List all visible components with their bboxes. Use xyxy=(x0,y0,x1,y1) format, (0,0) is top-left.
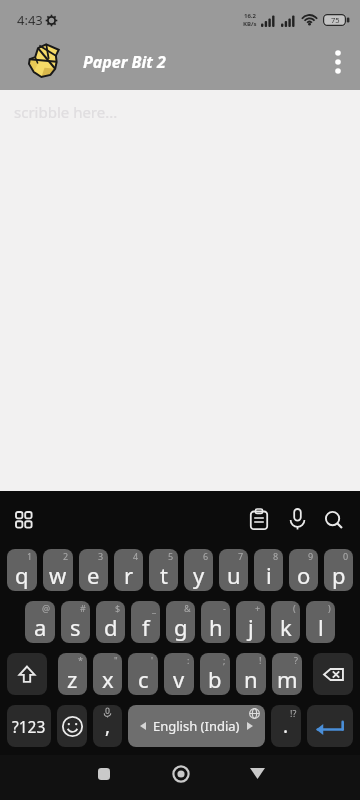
button[interactable]: h xyxy=(201,601,230,643)
staticText: . xyxy=(283,713,289,739)
staticText: ? xyxy=(294,654,298,666)
staticText: n xyxy=(244,664,258,694)
button[interactable]: t xyxy=(149,549,178,591)
staticText: l xyxy=(318,612,324,642)
staticText: o xyxy=(297,560,311,590)
staticText: ; xyxy=(223,654,226,666)
staticText: # xyxy=(80,602,86,614)
button[interactable]: English (India) xyxy=(128,705,265,747)
staticText: : xyxy=(187,654,190,666)
staticText: " xyxy=(114,654,118,666)
button[interactable] xyxy=(307,705,353,747)
button[interactable] xyxy=(65,755,142,792)
staticText: x xyxy=(102,664,114,694)
button[interactable] xyxy=(7,653,47,695)
staticText: b xyxy=(208,664,222,694)
button[interactable]: f xyxy=(131,601,160,643)
button[interactable]: n xyxy=(236,653,266,695)
staticText: ) xyxy=(328,602,331,614)
button[interactable]: o xyxy=(289,549,318,591)
button[interactable] xyxy=(142,755,219,792)
staticText: u xyxy=(227,560,241,590)
staticText: 4:43 xyxy=(17,11,43,29)
button[interactable]: ?123 xyxy=(7,705,51,747)
staticText: h xyxy=(209,612,223,642)
staticText: 3 xyxy=(98,550,104,562)
staticText: c xyxy=(138,664,149,694)
button[interactable]: k xyxy=(271,601,300,643)
button[interactable] xyxy=(278,495,316,544)
staticText: English (India) xyxy=(153,717,240,735)
staticText: f xyxy=(142,612,150,642)
staticText: 1 xyxy=(27,550,33,562)
button[interactable]: u xyxy=(219,549,248,591)
button[interactable] xyxy=(316,40,360,84)
staticText: ! xyxy=(259,654,262,666)
staticText: p xyxy=(332,560,346,590)
button[interactable]: x xyxy=(93,653,122,695)
staticText: 5 xyxy=(168,550,174,562)
staticText: 8 xyxy=(273,550,279,562)
button[interactable]: d xyxy=(96,601,125,643)
staticText: y xyxy=(193,560,205,590)
staticText: j xyxy=(248,612,254,642)
staticText: - xyxy=(223,602,226,614)
staticText: w xyxy=(49,560,67,590)
staticText: KB/s xyxy=(243,20,257,28)
staticText: Paper Bit 2 xyxy=(83,51,166,73)
button[interactable]: , xyxy=(93,705,122,747)
staticText: a xyxy=(34,612,47,642)
staticText: + xyxy=(255,602,261,614)
button[interactable]: . xyxy=(271,705,301,747)
button[interactable] xyxy=(316,495,352,544)
button[interactable]: e xyxy=(79,549,108,591)
staticText: * xyxy=(78,654,83,666)
button[interactable] xyxy=(57,705,87,747)
staticText: 7 xyxy=(238,550,244,562)
staticText: t xyxy=(160,560,168,590)
staticText: scribble here... xyxy=(14,102,118,122)
button[interactable]: z xyxy=(58,653,87,695)
staticText: & xyxy=(184,602,191,614)
button[interactable]: g xyxy=(166,601,195,643)
button[interactable]: c xyxy=(128,653,158,695)
staticText: @ xyxy=(42,602,51,614)
button[interactable]: l xyxy=(306,601,335,643)
button[interactable] xyxy=(219,755,296,792)
staticText: ( xyxy=(293,602,296,614)
button[interactable]: r xyxy=(114,549,143,591)
staticText: 2 xyxy=(63,550,69,562)
button[interactable]: b xyxy=(200,653,230,695)
staticText: ?123 xyxy=(12,716,46,737)
staticText: ' xyxy=(151,654,154,666)
staticText: 16.2 xyxy=(244,12,256,20)
staticText: _ xyxy=(152,602,156,614)
staticText: q xyxy=(15,560,29,590)
button[interactable] xyxy=(313,653,353,695)
button[interactable] xyxy=(240,495,278,544)
button[interactable]: j xyxy=(236,601,265,643)
staticText: s xyxy=(70,612,81,642)
button[interactable]: y xyxy=(184,549,213,591)
button[interactable]: w xyxy=(43,549,73,591)
staticText: d xyxy=(104,612,118,642)
staticText: k xyxy=(280,612,292,642)
button[interactable]: p xyxy=(324,549,353,591)
staticText: 9 xyxy=(308,550,314,562)
button[interactable]: a xyxy=(25,601,55,643)
staticText: $ xyxy=(115,602,121,614)
staticText: r xyxy=(124,560,134,590)
button[interactable]: i xyxy=(254,549,283,591)
staticText: 4 xyxy=(133,550,139,562)
button[interactable] xyxy=(0,495,48,544)
staticText: 0 xyxy=(343,550,349,562)
staticText: v xyxy=(173,664,185,694)
staticText: i xyxy=(266,560,272,590)
button[interactable]: v xyxy=(164,653,194,695)
staticText: m xyxy=(277,664,298,694)
staticText: z xyxy=(67,664,78,694)
button[interactable]: m xyxy=(272,653,302,695)
button[interactable]: s xyxy=(61,601,90,643)
button[interactable]: q xyxy=(7,549,37,591)
